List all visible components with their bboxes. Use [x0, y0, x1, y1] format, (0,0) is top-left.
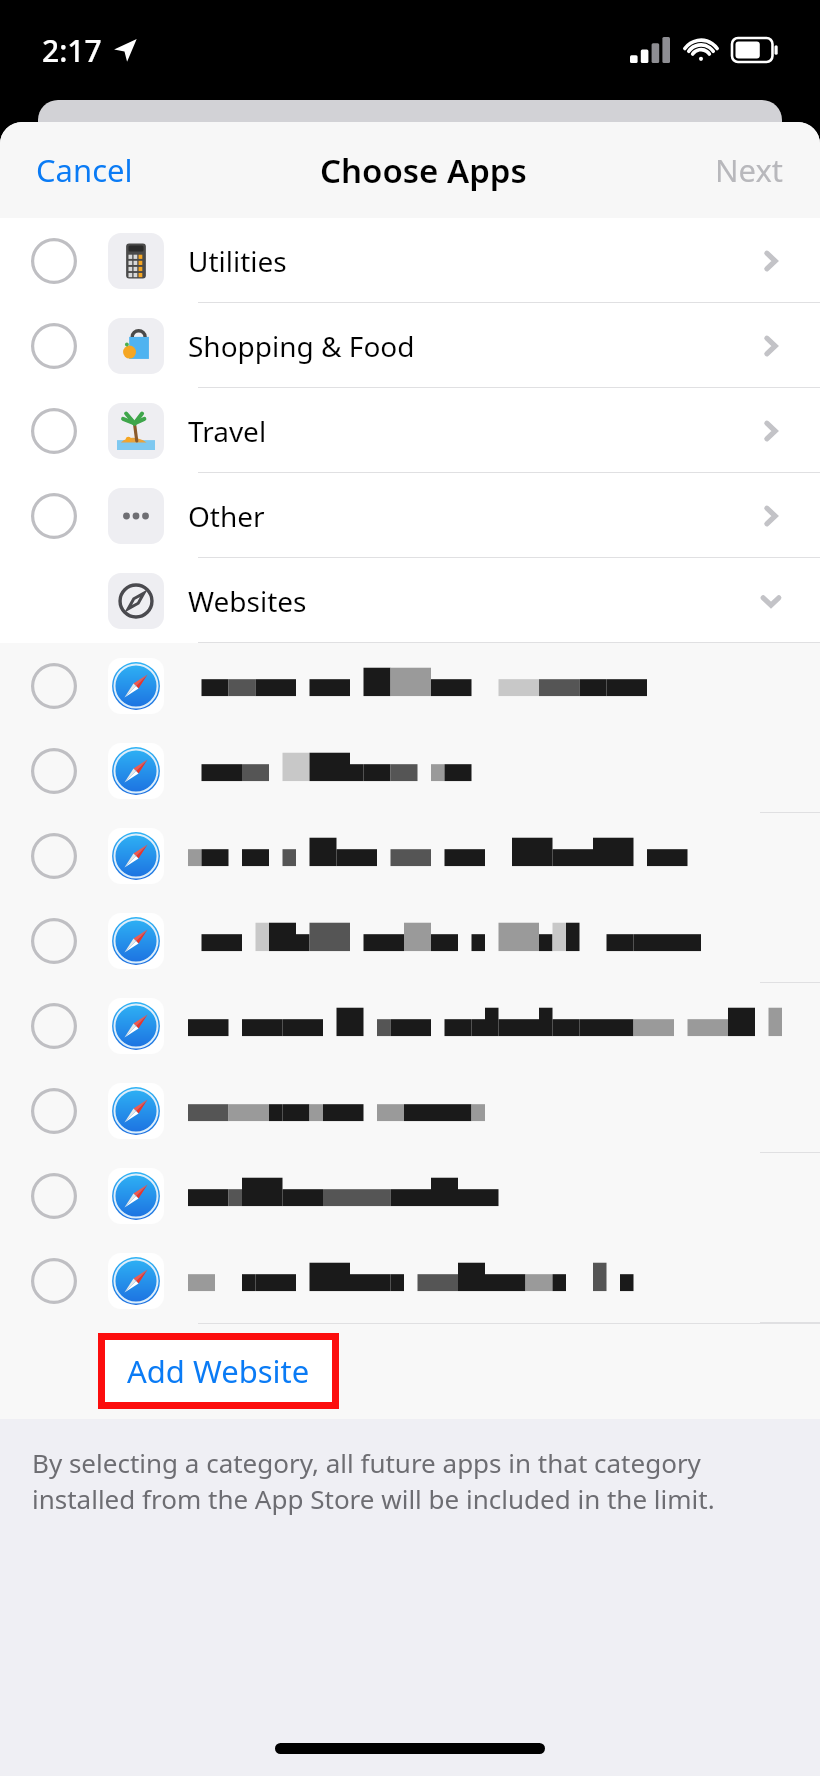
button[interactable]: Travel: [0, 388, 820, 473]
button[interactable]: [0, 728, 820, 813]
button[interactable]: [0, 898, 820, 983]
button[interactable]: Add Website: [98, 1333, 339, 1409]
button[interactable]: [0, 1153, 820, 1238]
staticText: Next: [715, 149, 784, 191]
button[interactable]: [0, 643, 820, 728]
button[interactable]: Cancel: [22, 143, 147, 197]
staticText: Choose Apps: [320, 148, 527, 193]
button[interactable]: Shopping & Food: [0, 303, 820, 388]
button[interactable]: Utilities: [0, 218, 820, 303]
button[interactable]: [0, 1068, 820, 1153]
staticText: Cancel: [36, 149, 133, 191]
button[interactable]: [0, 813, 820, 898]
button[interactable]: [0, 1238, 820, 1323]
staticText: Add Website: [127, 1350, 310, 1392]
staticText: Websites: [188, 582, 758, 620]
staticText: By selecting a category, all future apps…: [32, 1445, 788, 1517]
button[interactable]: Websites: [0, 558, 820, 643]
staticText: 2:17: [42, 30, 102, 71]
staticText: Utilities: [188, 242, 758, 280]
button[interactable]: [0, 983, 820, 1068]
staticText: Shopping & Food: [188, 327, 758, 365]
button[interactable]: Next: [701, 143, 798, 197]
staticText: Travel: [188, 412, 758, 450]
button[interactable]: Other: [0, 473, 820, 558]
staticText: Other: [188, 497, 758, 535]
